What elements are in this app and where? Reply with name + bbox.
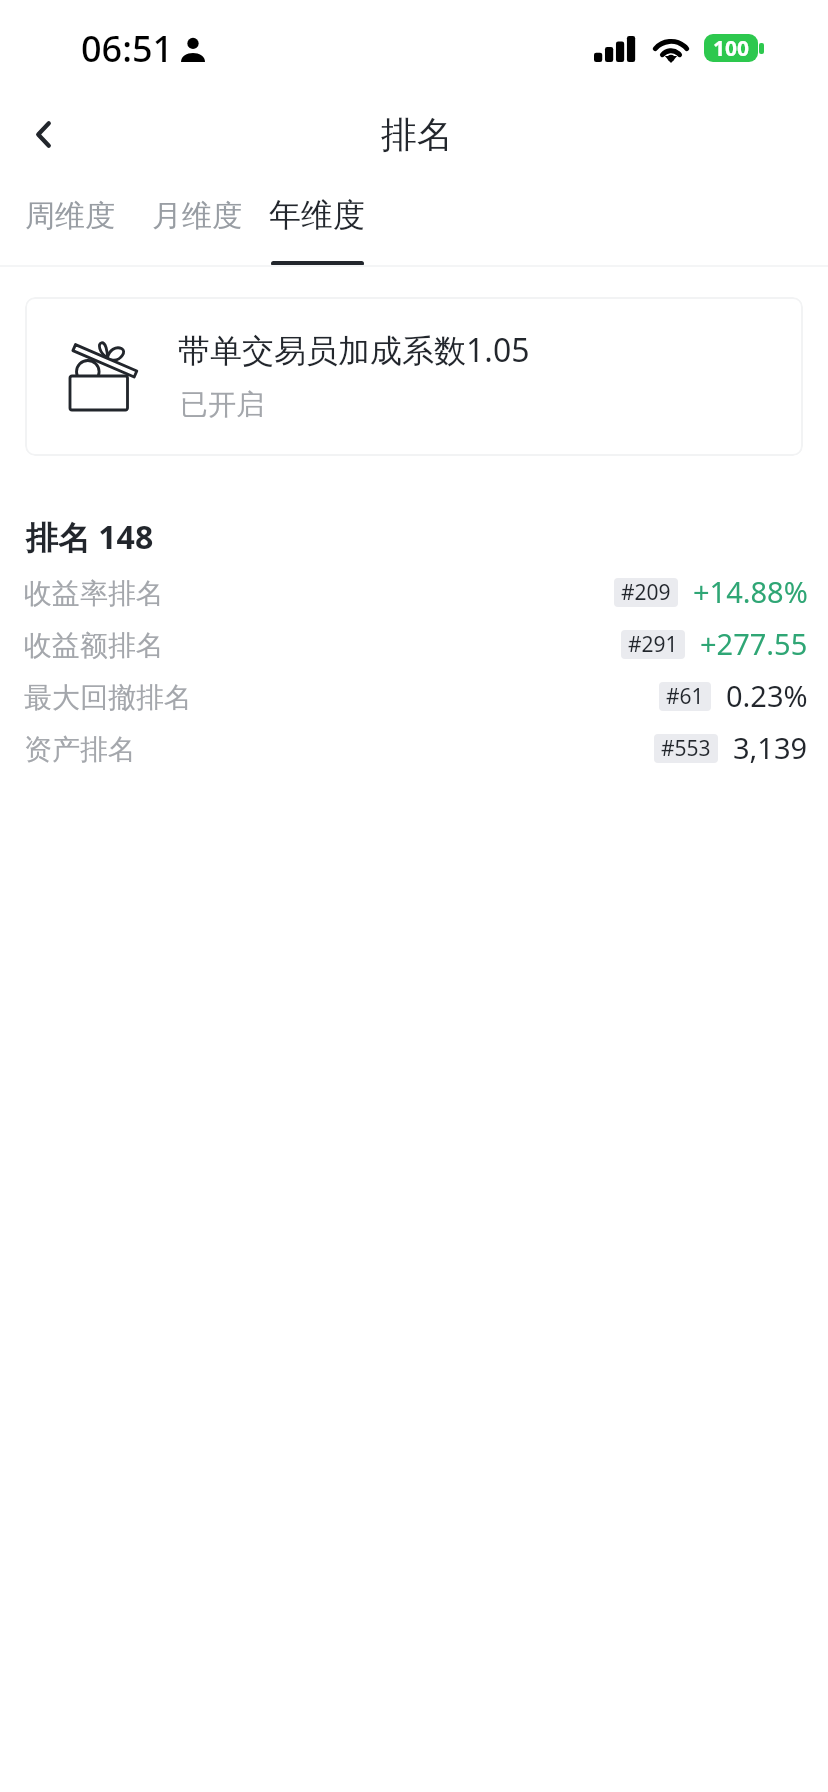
button[interactable]: 最大回撤排名: [0, 672, 828, 724]
staticText: 排名 148: [26, 515, 154, 559]
button[interactable]: 年维度: [252, 176, 382, 265]
button[interactable]: 收益额排名: [0, 620, 828, 672]
staticText: #209: [621, 578, 671, 607]
staticText: 收益额排名: [24, 628, 164, 663]
staticText: 带单交易员加成系数1.05: [178, 328, 530, 372]
button[interactable]: Back: [15, 106, 71, 162]
staticText: 3,139: [733, 728, 808, 767]
staticText: 资产排名: [24, 732, 136, 767]
staticText: 06:51: [81, 24, 174, 73]
staticText: 月维度: [152, 197, 242, 235]
staticText: 100: [713, 34, 750, 62]
staticText: 排名: [381, 112, 453, 157]
staticText: +277.55: [700, 624, 808, 663]
button[interactable]: 资产排名: [0, 724, 828, 776]
staticText: +14.88%: [693, 572, 808, 611]
staticText: #291: [628, 630, 678, 659]
button[interactable]: 周维度: [8, 176, 132, 265]
staticText: 已开启: [180, 387, 264, 422]
staticText: #61: [666, 682, 704, 711]
staticText: #553: [661, 734, 711, 763]
button[interactable]: 收益率排名: [0, 568, 828, 620]
staticText: 收益率排名: [24, 576, 164, 611]
staticText: 最大回撤排名: [24, 680, 192, 715]
staticText: 0.23%: [726, 676, 808, 715]
staticText: 周维度: [25, 197, 115, 235]
staticText: 年维度: [269, 195, 365, 235]
button[interactable]: 带单交易员加成系数1.05: [25, 297, 803, 456]
button[interactable]: 月维度: [135, 176, 259, 265]
